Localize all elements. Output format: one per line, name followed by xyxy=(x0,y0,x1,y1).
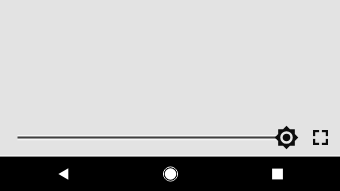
button[interactable]: Back xyxy=(46,157,81,191)
button[interactable]: Home xyxy=(153,157,188,191)
button[interactable]: Brightness slider xyxy=(0,128,340,148)
button[interactable]: Brightness xyxy=(274,125,299,150)
button[interactable]: Recent apps xyxy=(260,157,295,191)
button[interactable]: Enter fullscreen xyxy=(313,130,328,145)
